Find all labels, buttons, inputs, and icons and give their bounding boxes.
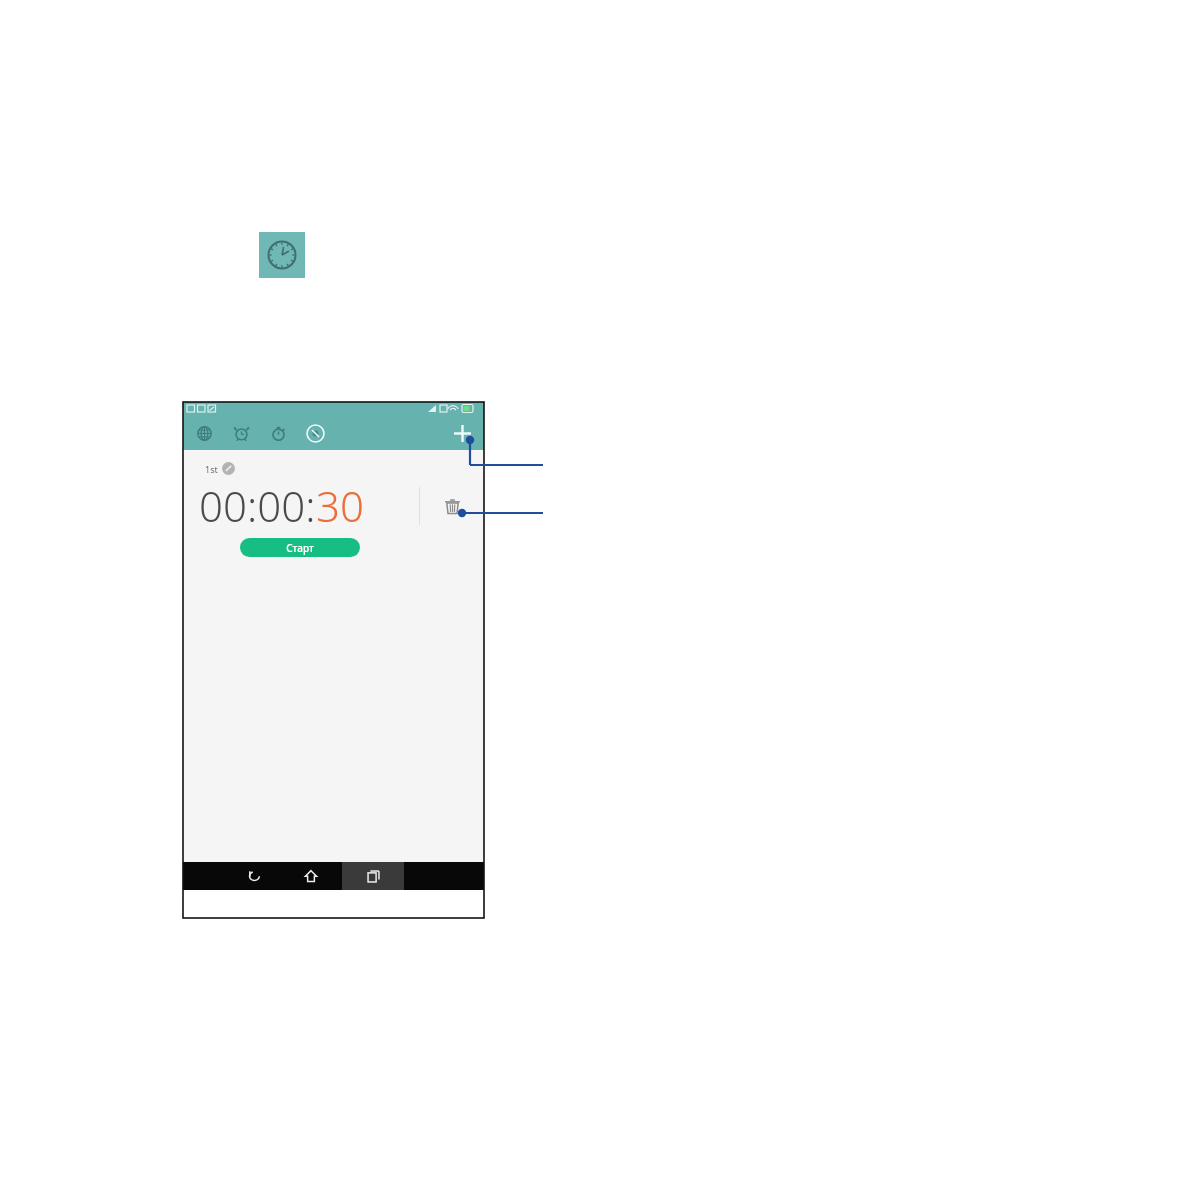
staticText: 1st: [205, 463, 218, 475]
button[interactable]: 1st: [205, 462, 235, 475]
button[interactable]: Back: [228, 862, 280, 890]
button[interactable]: Timer: [302, 420, 328, 446]
staticText: Старт: [286, 541, 314, 555]
staticText: 30: [316, 477, 364, 534]
button[interactable]: 00:00:: [199, 477, 364, 534]
button[interactable]: Старт: [240, 538, 360, 557]
staticText: 00:00:: [199, 477, 316, 534]
button[interactable]: Alarm: [228, 420, 254, 446]
button[interactable]: Clock app icon: [259, 232, 305, 278]
button[interactable]: Add timer: [445, 416, 479, 450]
button[interactable]: Delete timer: [437, 491, 467, 521]
button[interactable]: World clock: [191, 420, 217, 446]
button[interactable]: Stopwatch: [265, 420, 291, 446]
button[interactable]: Home: [280, 862, 342, 890]
button[interactable]: Recent apps: [342, 862, 404, 890]
